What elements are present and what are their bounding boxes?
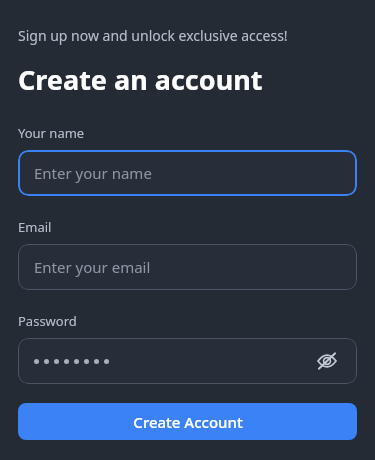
button[interactable]: Create Account bbox=[18, 403, 357, 440]
staticText: Enter your email bbox=[34, 257, 151, 277]
button[interactable]: Enter your email bbox=[18, 244, 357, 290]
button[interactable]: Show password bbox=[18, 338, 357, 384]
staticText: Email bbox=[18, 218, 52, 236]
staticText: Your name bbox=[18, 124, 85, 142]
staticText: Create Account bbox=[133, 412, 243, 432]
button[interactable]: Show password bbox=[313, 347, 341, 375]
staticText: Sign up now and unlock exclusive access! bbox=[18, 26, 288, 45]
button[interactable]: Enter your name bbox=[18, 150, 357, 196]
staticText: Enter your name bbox=[34, 163, 152, 183]
staticText: Password bbox=[18, 312, 77, 330]
staticText: Create an account bbox=[18, 61, 263, 98]
